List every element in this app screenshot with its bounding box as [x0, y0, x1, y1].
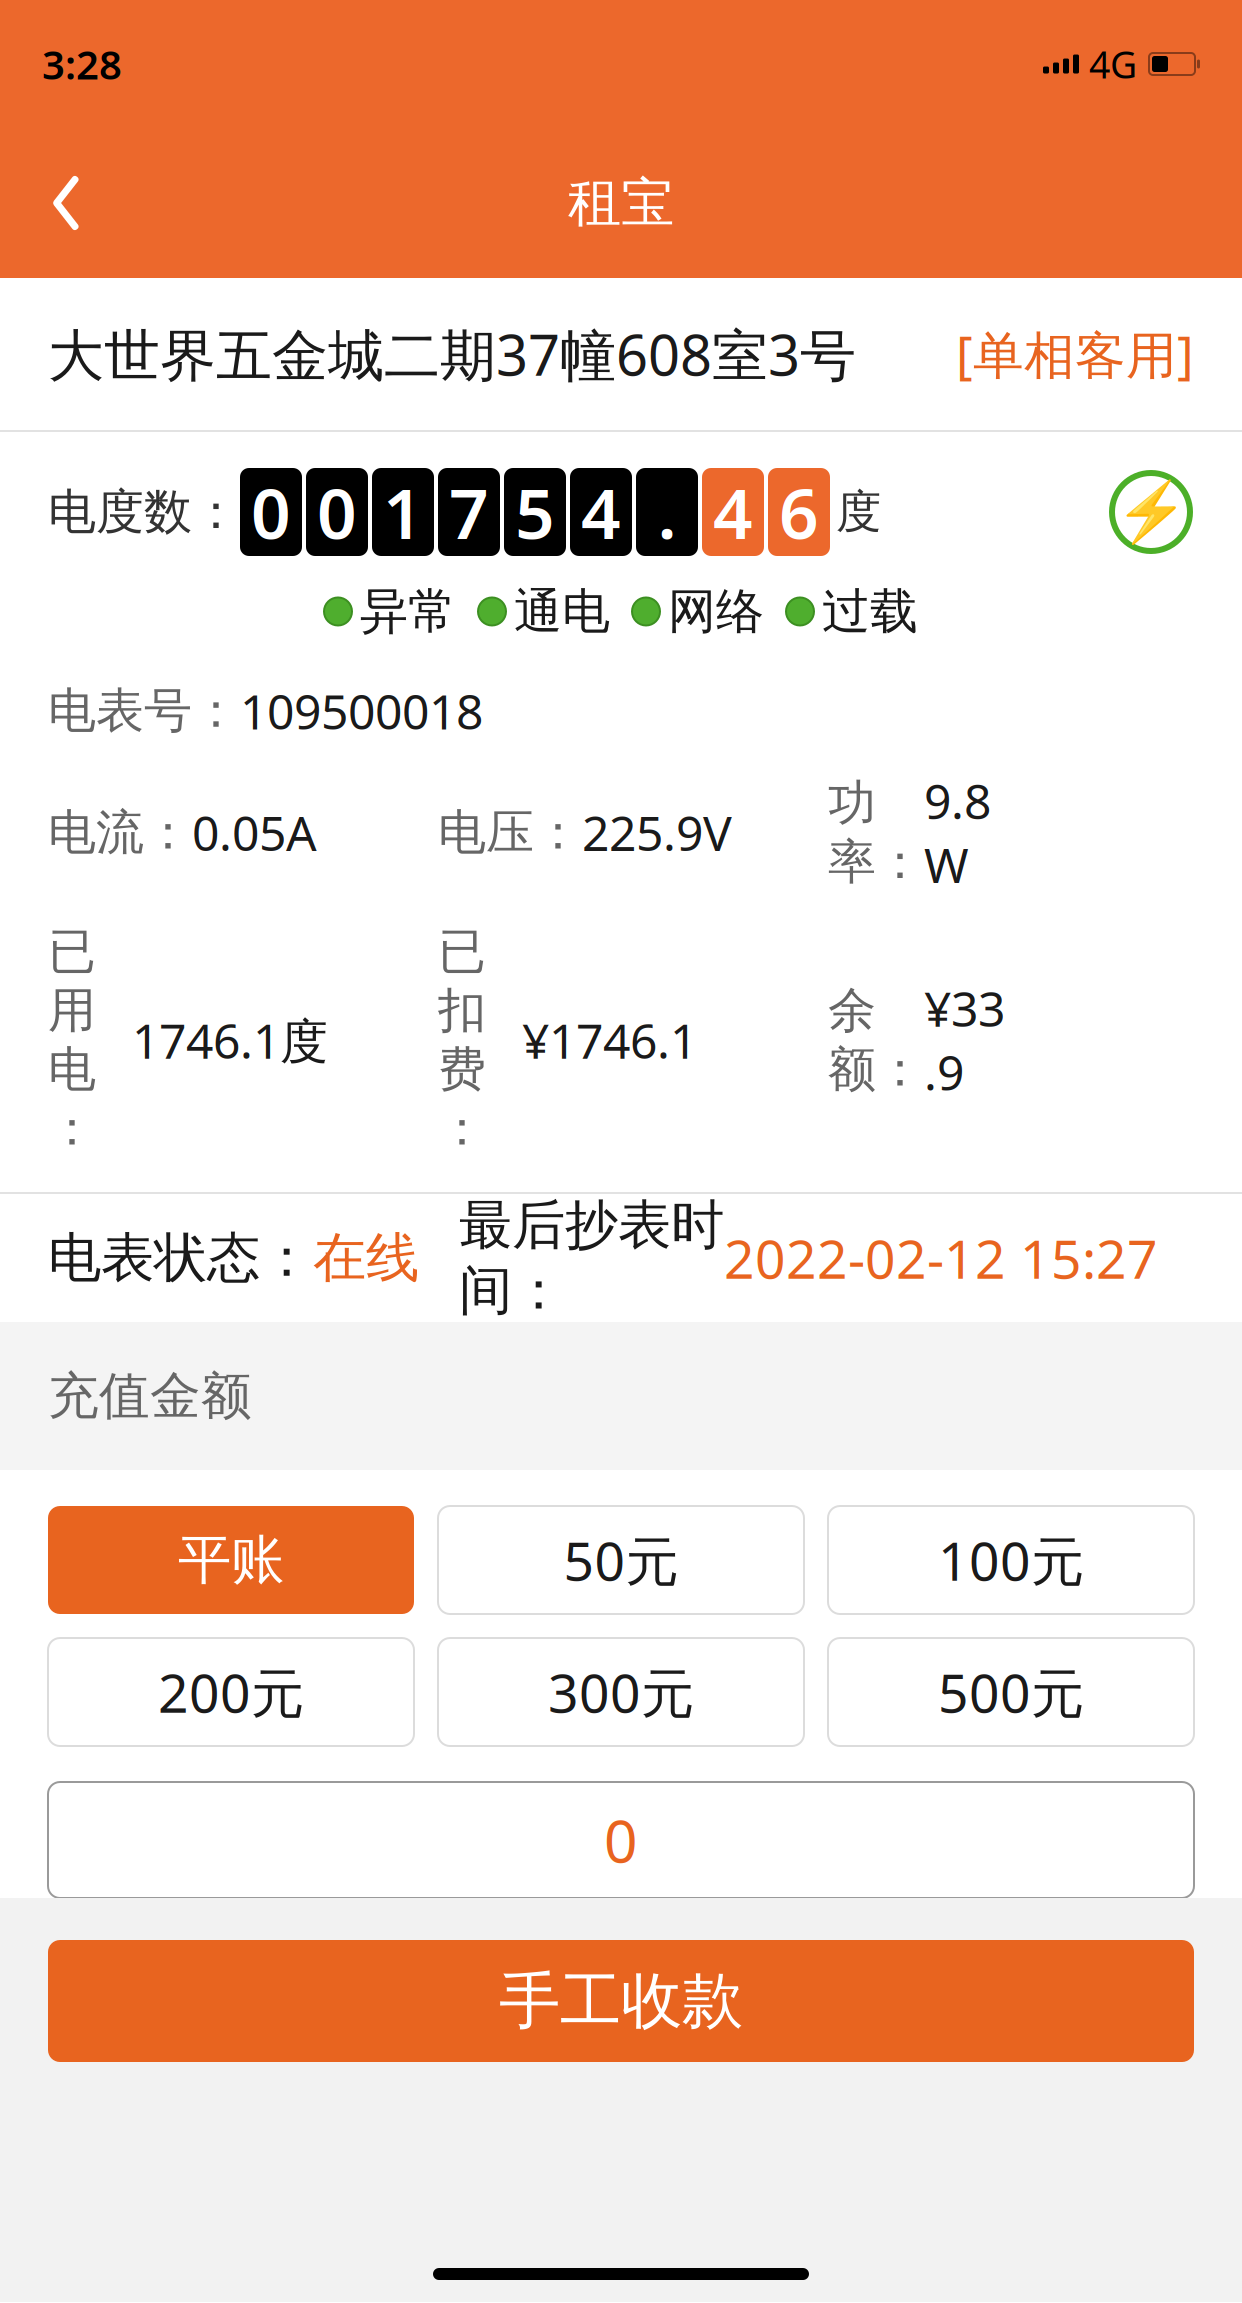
staticText: 100元: [938, 1525, 1084, 1595]
staticText: 过载: [822, 582, 918, 641]
staticText: 200元: [158, 1657, 304, 1727]
staticText: 4G: [1089, 39, 1137, 89]
staticText: 1: [383, 466, 423, 558]
staticText: [单相客用]: [956, 320, 1194, 388]
staticText: 50元: [563, 1525, 678, 1595]
staticText: 0.05A: [192, 801, 317, 864]
staticText: 0: [317, 466, 357, 558]
button[interactable]: 200元: [48, 1638, 414, 1746]
staticText: 电度数：: [48, 482, 240, 541]
staticText: 通电: [514, 582, 610, 641]
staticText: 在线: [313, 1225, 419, 1291]
staticText: 4: [713, 466, 753, 558]
button[interactable]: 平账: [48, 1506, 414, 1614]
staticText: 手工收款: [499, 1963, 743, 2039]
staticText: 0: [604, 1801, 638, 1879]
staticText: 500元: [938, 1657, 1084, 1727]
staticText: 电表状态：: [48, 1225, 313, 1291]
staticText: 7: [449, 466, 489, 558]
staticText: 度: [836, 484, 881, 540]
staticText: 最后抄表时间：: [459, 1192, 724, 1323]
button[interactable]: 500元: [828, 1638, 1194, 1746]
staticText: ⚡: [1114, 478, 1187, 545]
staticText: 平账: [178, 1527, 284, 1593]
staticText: 300元: [548, 1657, 694, 1727]
staticText: 0: [251, 466, 291, 558]
staticText: .: [657, 466, 676, 558]
staticText: 异常: [360, 582, 456, 641]
button[interactable]: 返回: [20, 157, 112, 249]
staticText: 5: [515, 466, 555, 558]
staticText: ¥1746.1: [522, 1008, 697, 1072]
button[interactable]: 300元: [438, 1638, 804, 1746]
staticText: 4: [581, 466, 621, 558]
staticText: 电流：: [48, 803, 192, 862]
button[interactable]: 100元: [828, 1506, 1194, 1614]
staticText: 租宝: [568, 170, 674, 236]
staticText: 225.9V: [582, 801, 732, 864]
staticText: 已用 电：: [48, 922, 96, 1158]
staticText: 2022-02-12 15:27: [724, 1223, 1158, 1293]
staticText: 1746.1度: [132, 1008, 328, 1072]
staticText: 大世界五金城二期37幢608室3号: [48, 317, 856, 391]
staticText: 网络: [668, 582, 764, 641]
staticText: 9.8W: [924, 769, 991, 896]
staticText: 功率：: [828, 773, 924, 891]
staticText: 109500018: [240, 679, 483, 743]
button[interactable]: 0: [48, 1782, 1194, 1898]
staticText: 3:28: [42, 37, 122, 90]
button[interactable]: 50元: [438, 1506, 804, 1614]
button[interactable]: 手工收款: [48, 1940, 1194, 2062]
staticText: 电表号：: [48, 681, 240, 740]
staticText: 已扣 费：: [438, 922, 486, 1158]
staticText: ¥33.9: [924, 976, 1005, 1104]
staticText: 余额：: [828, 981, 924, 1099]
staticText: 6: [779, 466, 819, 558]
staticText: 充值金额: [48, 1365, 252, 1427]
staticText: 电压：: [438, 803, 582, 862]
